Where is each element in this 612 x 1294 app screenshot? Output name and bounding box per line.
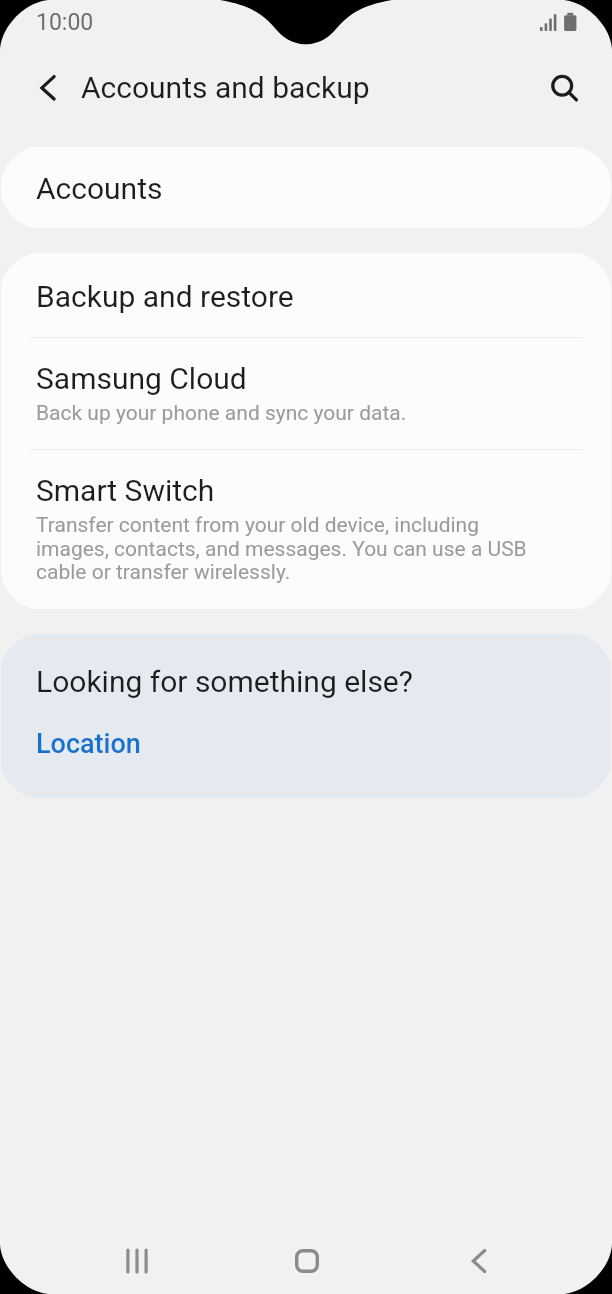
button[interactable]: Home <box>276 1236 337 1285</box>
button[interactable]: Search <box>540 63 586 109</box>
button[interactable]: Smart Switch <box>1 450 611 609</box>
staticText: Samsung Cloud <box>36 361 247 396</box>
staticText: Backup and restore <box>36 279 294 314</box>
staticText: Transfer content from your old device, i… <box>36 513 536 584</box>
staticText: Accounts and backup <box>81 70 370 105</box>
button[interactable]: Back <box>447 1236 508 1285</box>
staticText: Accounts <box>36 171 163 206</box>
button[interactable]: Backup and restore <box>1 253 611 337</box>
staticText: Location <box>36 728 141 760</box>
staticText: Smart Switch <box>36 473 215 508</box>
staticText: Back up your phone and sync your data. <box>36 401 407 426</box>
button[interactable]: Accounts <box>1 147 611 228</box>
button[interactable]: Samsung Cloud <box>1 338 611 449</box>
button[interactable]: Location <box>36 728 141 760</box>
button[interactable]: Recent apps <box>106 1236 167 1285</box>
button[interactable]: Navigate up <box>22 63 68 109</box>
staticText: Looking for something else? <box>36 664 413 699</box>
staticText: 10:00 <box>36 9 94 36</box>
